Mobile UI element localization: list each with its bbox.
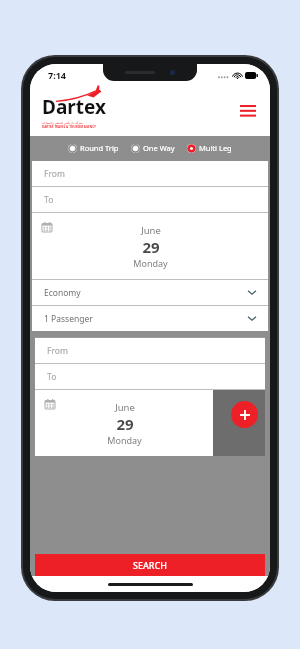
staticText: Monday — [133, 257, 168, 269]
staticText: 29 — [142, 237, 160, 257]
staticText: One Way — [143, 143, 175, 153]
staticText: June — [141, 224, 161, 237]
button[interactable]: Economy — [32, 280, 268, 305]
staticText: To — [44, 194, 54, 206]
staticText: Multi Leg — [199, 143, 232, 153]
staticText: To — [47, 371, 57, 383]
staticText: Economy — [44, 287, 81, 299]
staticText: Monday — [107, 434, 142, 446]
button[interactable]: June — [32, 213, 268, 279]
staticText: 1 Passenger — [44, 313, 93, 325]
staticText: شركة دارتكس للسفر والسياحة — [42, 121, 83, 125]
button[interactable]: June — [35, 390, 213, 456]
button[interactable]: To — [35, 364, 265, 389]
staticText: From — [47, 345, 68, 357]
staticText: 29 — [116, 414, 134, 434]
button[interactable]: From — [35, 338, 265, 363]
staticText: DARTEX TRAVEL & TOURISM AGENCY — [42, 125, 96, 129]
button[interactable]: Round Trip — [67, 143, 120, 153]
staticText: June — [115, 401, 135, 414]
staticText: 7:14 — [48, 69, 66, 81]
button[interactable]: From — [32, 161, 268, 186]
button[interactable]: To — [32, 187, 268, 212]
staticText: From — [44, 168, 65, 180]
staticText: Round Trip — [80, 143, 119, 153]
button[interactable]: Add leg — [231, 401, 258, 428]
staticText: Dartex — [42, 94, 106, 120]
button[interactable]: Menu — [236, 99, 260, 123]
staticText: SEARCH — [133, 559, 167, 571]
button[interactable]: One Way — [130, 143, 176, 153]
button[interactable]: Multi Leg — [186, 143, 233, 153]
button[interactable]: SEARCH — [35, 554, 265, 576]
button[interactable]: 1 Passenger — [32, 306, 268, 331]
